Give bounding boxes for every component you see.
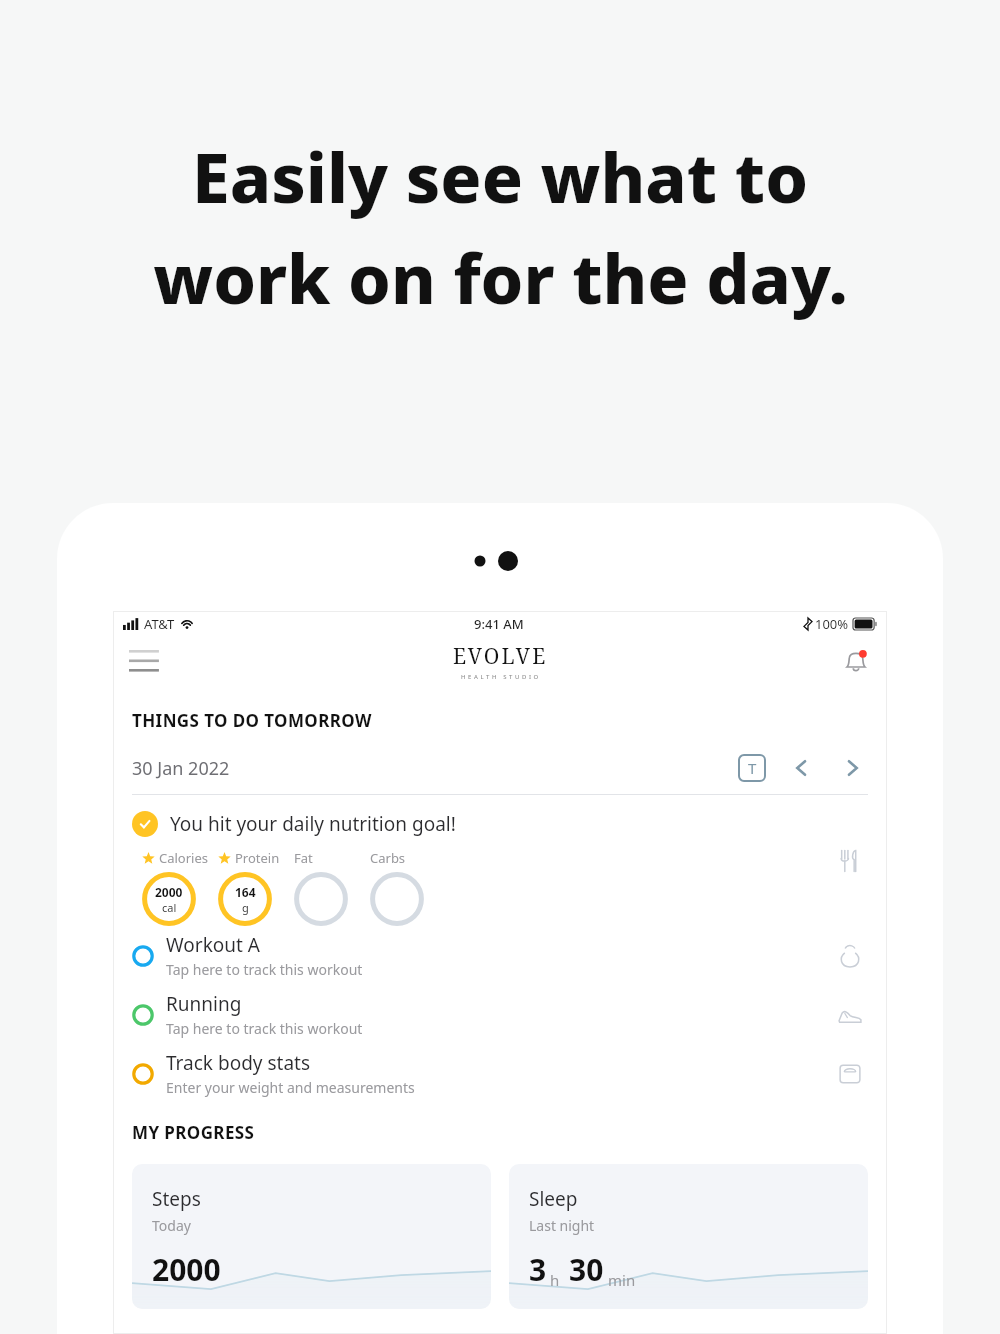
button[interactable] bbox=[294, 872, 348, 926]
button[interactable]: Menu bbox=[129, 648, 163, 674]
staticText: 30 bbox=[569, 1249, 604, 1290]
staticText: 2000 bbox=[155, 884, 183, 900]
button[interactable]: Steps bbox=[132, 1164, 491, 1309]
button[interactable]: Previous day bbox=[788, 755, 814, 781]
staticText: Track body stats bbox=[166, 1050, 311, 1076]
button[interactable]: Today bbox=[738, 754, 766, 782]
staticText: cal bbox=[162, 900, 177, 915]
button[interactable]: Running bbox=[113, 985, 887, 1044]
staticText: Today bbox=[152, 1216, 191, 1235]
staticText: h bbox=[550, 1270, 560, 1290]
staticText: Calories bbox=[159, 849, 209, 867]
staticText: 100% bbox=[815, 615, 849, 633]
staticText: 164 bbox=[235, 884, 256, 900]
staticText: 9:41 AM bbox=[474, 615, 524, 633]
button[interactable]: 2000 bbox=[142, 872, 196, 926]
staticText: Carbs bbox=[370, 849, 406, 867]
staticText: Easily see what to bbox=[192, 130, 808, 223]
staticText: THINGS TO DO TOMORROW bbox=[132, 709, 372, 732]
button[interactable] bbox=[370, 872, 424, 926]
staticText: 3 bbox=[529, 1249, 547, 1290]
staticText: EVOLVE bbox=[453, 642, 548, 671]
button[interactable]: Notifications bbox=[841, 646, 871, 676]
button[interactable]: Sleep bbox=[509, 1164, 868, 1309]
staticText: MY PROGRESS bbox=[132, 1121, 255, 1144]
staticText: HEALTH STUDIO bbox=[461, 673, 541, 681]
button[interactable]: Next day bbox=[840, 755, 866, 781]
staticText: Running bbox=[166, 991, 242, 1017]
staticText: Sleep bbox=[529, 1186, 578, 1212]
staticText: Tap here to track this workout bbox=[166, 960, 363, 979]
staticText: You hit your daily nutrition goal! bbox=[170, 811, 456, 837]
staticText: g bbox=[242, 900, 249, 915]
staticText: Last night bbox=[529, 1216, 595, 1235]
staticText: work on for the day. bbox=[153, 231, 848, 324]
staticText: Fat bbox=[294, 849, 313, 867]
staticText: AT&T bbox=[144, 615, 175, 633]
staticText: Steps bbox=[152, 1186, 201, 1212]
staticText: T bbox=[748, 758, 757, 778]
staticText: min bbox=[608, 1270, 636, 1290]
staticText: Tap here to track this workout bbox=[166, 1019, 363, 1038]
staticText: 30 Jan 2022 bbox=[132, 756, 230, 781]
button[interactable]: 164 bbox=[218, 872, 272, 926]
staticText: Protein bbox=[235, 849, 280, 867]
button[interactable]: Workout A bbox=[113, 926, 887, 985]
staticText: Workout A bbox=[166, 932, 260, 958]
button[interactable]: Track body stats bbox=[113, 1044, 887, 1103]
staticText: 2000 bbox=[152, 1249, 221, 1290]
staticText: Enter your weight and measurements bbox=[166, 1078, 415, 1097]
